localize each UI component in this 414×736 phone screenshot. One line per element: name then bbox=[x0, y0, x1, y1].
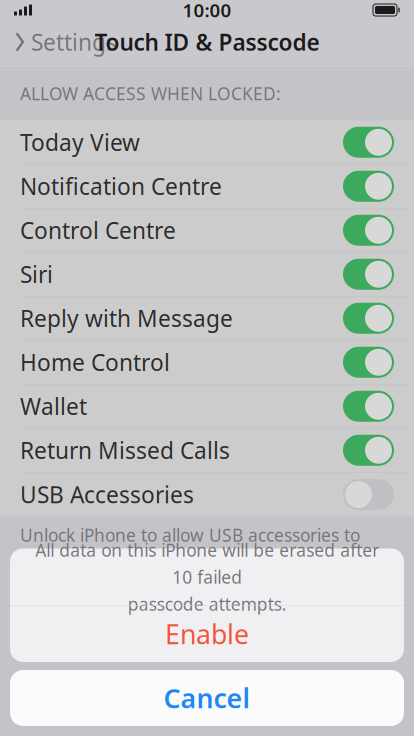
staticText: Wallet bbox=[20, 391, 87, 421]
staticText: Cancel bbox=[163, 680, 250, 716]
staticText: Siri bbox=[20, 259, 53, 289]
button[interactable]: Today View bbox=[0, 120, 414, 164]
button[interactable]: Control Centre bbox=[0, 208, 414, 252]
staticText: USB Accessories bbox=[20, 479, 194, 509]
button[interactable]: Reply with Message bbox=[0, 296, 414, 340]
staticText: Enable bbox=[165, 616, 249, 652]
staticText: 10:00 bbox=[182, 0, 231, 22]
staticText: Touch ID & Passcode bbox=[94, 27, 319, 57]
button[interactable]: Settings bbox=[0, 21, 117, 63]
staticText: All data on this iPhone will be erased a… bbox=[35, 538, 379, 616]
staticText: Home Control bbox=[20, 347, 170, 377]
button[interactable]: Return Missed Calls bbox=[0, 428, 414, 472]
staticText: Control Centre bbox=[20, 215, 176, 245]
button[interactable]: Siri bbox=[0, 252, 414, 296]
button[interactable]: Home Control bbox=[0, 340, 414, 384]
staticText: Unlock iPhone to allow USB accessories t… bbox=[20, 523, 360, 625]
staticText: Today View bbox=[20, 127, 140, 157]
staticText: ALLOW ACCESS WHEN LOCKED: bbox=[20, 82, 281, 105]
button[interactable]: Cancel bbox=[10, 670, 404, 726]
staticText: Reply with Message bbox=[20, 303, 233, 333]
staticText: Settings bbox=[31, 27, 117, 57]
staticText: Return Missed Calls bbox=[20, 435, 230, 465]
button[interactable]: Wallet bbox=[0, 384, 414, 428]
staticText: Notification Centre bbox=[20, 171, 222, 201]
button[interactable]: USB Accessories bbox=[0, 472, 414, 516]
button[interactable]: Notification Centre bbox=[0, 164, 414, 208]
button[interactable]: Enable bbox=[10, 606, 404, 662]
